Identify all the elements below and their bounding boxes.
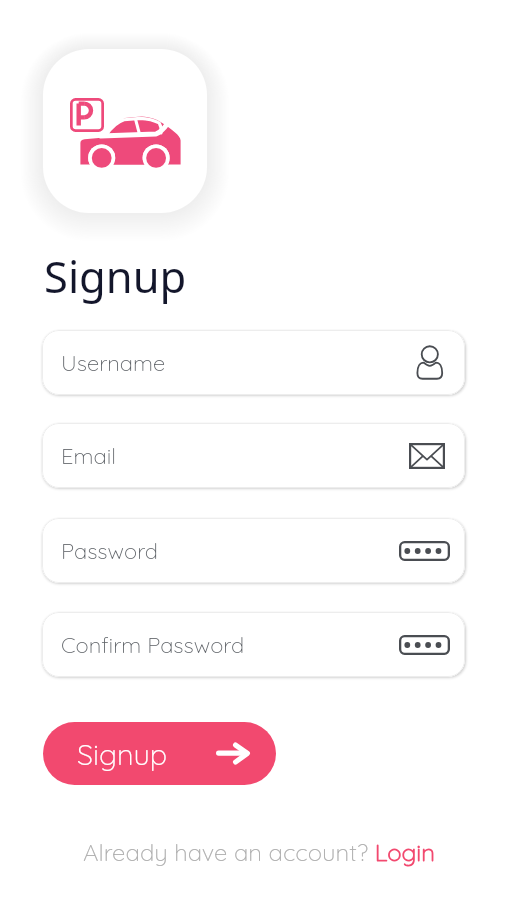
button[interactable]: Password: [42, 518, 465, 583]
staticText: Signup: [77, 736, 168, 772]
staticText: Password: [61, 537, 399, 565]
button[interactable]: Username: [42, 330, 465, 395]
staticText: Username: [61, 349, 416, 377]
button[interactable]: Confirm Password: [42, 612, 465, 677]
button[interactable]: Signup: [43, 722, 276, 785]
button[interactable]: Email: [42, 423, 465, 488]
button[interactable]: Already have an account? Login: [77, 831, 442, 873]
staticText: Confirm Password: [61, 631, 399, 659]
staticText: Signup: [44, 246, 187, 305]
staticText: Email: [61, 442, 409, 470]
